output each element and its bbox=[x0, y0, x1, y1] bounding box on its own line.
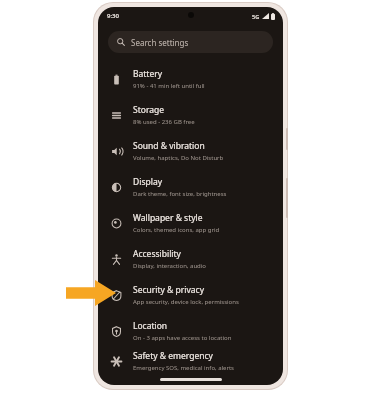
button[interactable]: Display bbox=[98, 169, 283, 205]
button[interactable]: Storage bbox=[98, 97, 283, 133]
staticText: Colors, themed icons, app grid bbox=[133, 226, 220, 234]
button[interactable]: Safety & emergency bbox=[98, 349, 283, 373]
staticText: Wallpaper & style bbox=[133, 212, 203, 224]
staticText: 8% used - 236 GB free bbox=[133, 118, 195, 126]
button[interactable]: Battery bbox=[98, 61, 283, 97]
staticText: Battery bbox=[133, 68, 163, 80]
staticText: 5G bbox=[252, 13, 260, 20]
staticText: Sound & vibration bbox=[133, 140, 205, 152]
staticText: 9:30 bbox=[107, 12, 119, 20]
button[interactable]: Accessibility bbox=[98, 241, 283, 277]
staticText: 91% - 41 min left until full bbox=[133, 82, 205, 90]
staticText: Emergency SOS, medical info, alerts bbox=[133, 364, 234, 372]
staticText: Volume, haptics, Do Not Disturb bbox=[133, 154, 224, 162]
button[interactable]: Security & privacy bbox=[98, 277, 283, 313]
button[interactable]: Location bbox=[98, 313, 283, 349]
staticText: Search settings bbox=[131, 37, 189, 48]
staticText: App security, device lock, permissions bbox=[133, 298, 239, 306]
button[interactable]: Sound & vibration bbox=[98, 133, 283, 169]
button[interactable]: Search settings bbox=[108, 31, 273, 53]
staticText: Display, interaction, audio bbox=[133, 262, 206, 270]
staticText: On - 3 apps have access to location bbox=[133, 334, 232, 342]
staticText: Location bbox=[133, 320, 168, 332]
button[interactable]: Wallpaper & style bbox=[98, 205, 283, 241]
staticText: Safety & emergency bbox=[133, 350, 213, 362]
staticText: Display bbox=[133, 176, 162, 188]
staticText: Accessibility bbox=[133, 248, 181, 260]
staticText: Dark theme, font size, brightness bbox=[133, 190, 227, 198]
staticText: Storage bbox=[133, 104, 165, 116]
staticText: Security & privacy bbox=[133, 284, 204, 296]
